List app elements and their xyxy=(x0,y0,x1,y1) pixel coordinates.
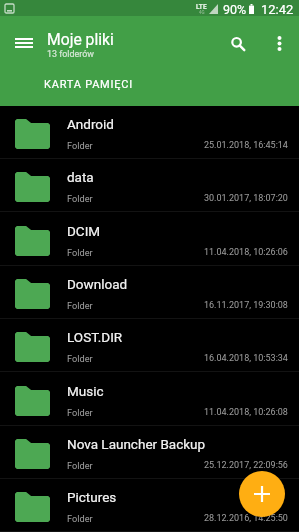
button[interactable]: Nova Launcher Backup xyxy=(0,426,299,479)
staticText: Folder xyxy=(67,407,93,418)
staticText: 4G xyxy=(199,10,205,15)
staticText: Pictures xyxy=(67,489,117,505)
staticText: 16.04.2018, 10:53:34 xyxy=(204,353,288,364)
staticText: LTE xyxy=(196,3,207,11)
button[interactable]: Music xyxy=(0,373,299,426)
staticText: 25.12.2017, 22:09:56 xyxy=(204,460,288,471)
staticText: LOST.DIR xyxy=(67,329,123,345)
button[interactable]: Add xyxy=(239,471,285,517)
button[interactable]: Android xyxy=(0,106,299,159)
staticText: 13 folderów xyxy=(47,49,94,59)
staticText: Download xyxy=(67,276,128,292)
button[interactable]: DCIM xyxy=(0,213,299,266)
staticText: Folder xyxy=(67,513,93,524)
staticText: Folder xyxy=(67,193,93,204)
staticText: 28.12.2016, 14:25:50 xyxy=(204,513,288,524)
staticText: KARTA PAMIĘCI xyxy=(44,78,133,91)
button[interactable]: Navigation menu xyxy=(1,20,46,65)
staticText: DCIM xyxy=(67,223,101,239)
staticText: 90% xyxy=(223,2,247,17)
staticText: Folder xyxy=(67,460,93,471)
staticText: Nova Launcher Backup xyxy=(67,436,206,452)
staticText: data xyxy=(67,169,94,185)
button[interactable]: Pictures xyxy=(0,479,299,532)
button[interactable]: KARTA PAMIĘCI xyxy=(44,78,133,91)
staticText: 12:42 xyxy=(261,2,294,17)
staticText: Folder xyxy=(67,300,93,311)
button[interactable]: LOST.DIR xyxy=(0,319,299,372)
staticText: Music xyxy=(67,383,104,399)
staticText: 11.04.2018, 10:26:08 xyxy=(204,407,288,418)
button[interactable]: More options xyxy=(262,26,296,60)
button[interactable]: data xyxy=(0,159,299,212)
staticText: Folder xyxy=(67,140,93,151)
staticText: 30.01.2017, 18:07:20 xyxy=(204,193,288,204)
staticText: 11.04.2018, 10:26:06 xyxy=(204,247,288,258)
staticText: Folder xyxy=(67,247,93,258)
staticText: 16.11.2017, 19:30:08 xyxy=(204,300,288,311)
button[interactable]: Search xyxy=(217,23,259,65)
button[interactable]: Download xyxy=(0,266,299,319)
staticText: Moje pliki xyxy=(47,30,114,48)
staticText: Android xyxy=(67,116,114,132)
staticText: Folder xyxy=(67,353,93,364)
staticText: 25.01.2018, 16:45:14 xyxy=(204,140,288,151)
